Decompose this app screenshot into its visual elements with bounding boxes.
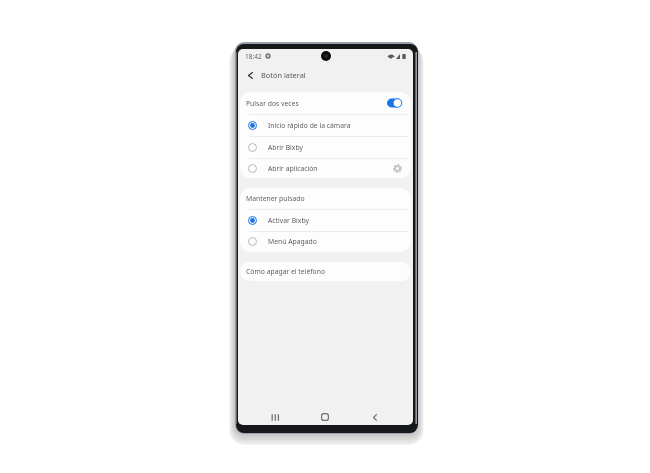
button[interactable]: Abrir aplicación	[238, 158, 413, 178]
button[interactable]: Menú Apagado	[238, 231, 413, 252]
staticText: Activar Bixby	[268, 216, 309, 225]
button[interactable]: Cómo apagar el teléfono	[238, 262, 413, 281]
staticText: Pulsar dos veces	[246, 99, 299, 108]
staticText: Menú Apagado	[268, 237, 317, 246]
button[interactable]: Home	[314, 406, 336, 425]
button[interactable]: Settings	[391, 162, 403, 174]
button[interactable]: Back	[364, 406, 386, 425]
staticText: Abrir aplicación	[268, 164, 318, 173]
staticText: Botón lateral	[261, 70, 306, 80]
button[interactable]: Recents	[264, 406, 286, 425]
button[interactable]: Activar Bixby	[238, 209, 413, 231]
button[interactable]: Pulsar dos veces	[238, 92, 413, 114]
staticText: Mantener pulsado	[246, 194, 305, 203]
button[interactable]: Back	[243, 68, 257, 82]
staticText: Abrir Bixby	[268, 143, 303, 152]
staticText: 18:42	[245, 52, 262, 61]
button[interactable]: Inicio rápido de la cámara	[238, 114, 413, 136]
staticText: Cómo apagar el teléfono	[246, 267, 326, 276]
button[interactable]: Abrir Bixby	[238, 136, 413, 158]
staticText: Inicio rápido de la cámara	[268, 121, 351, 130]
